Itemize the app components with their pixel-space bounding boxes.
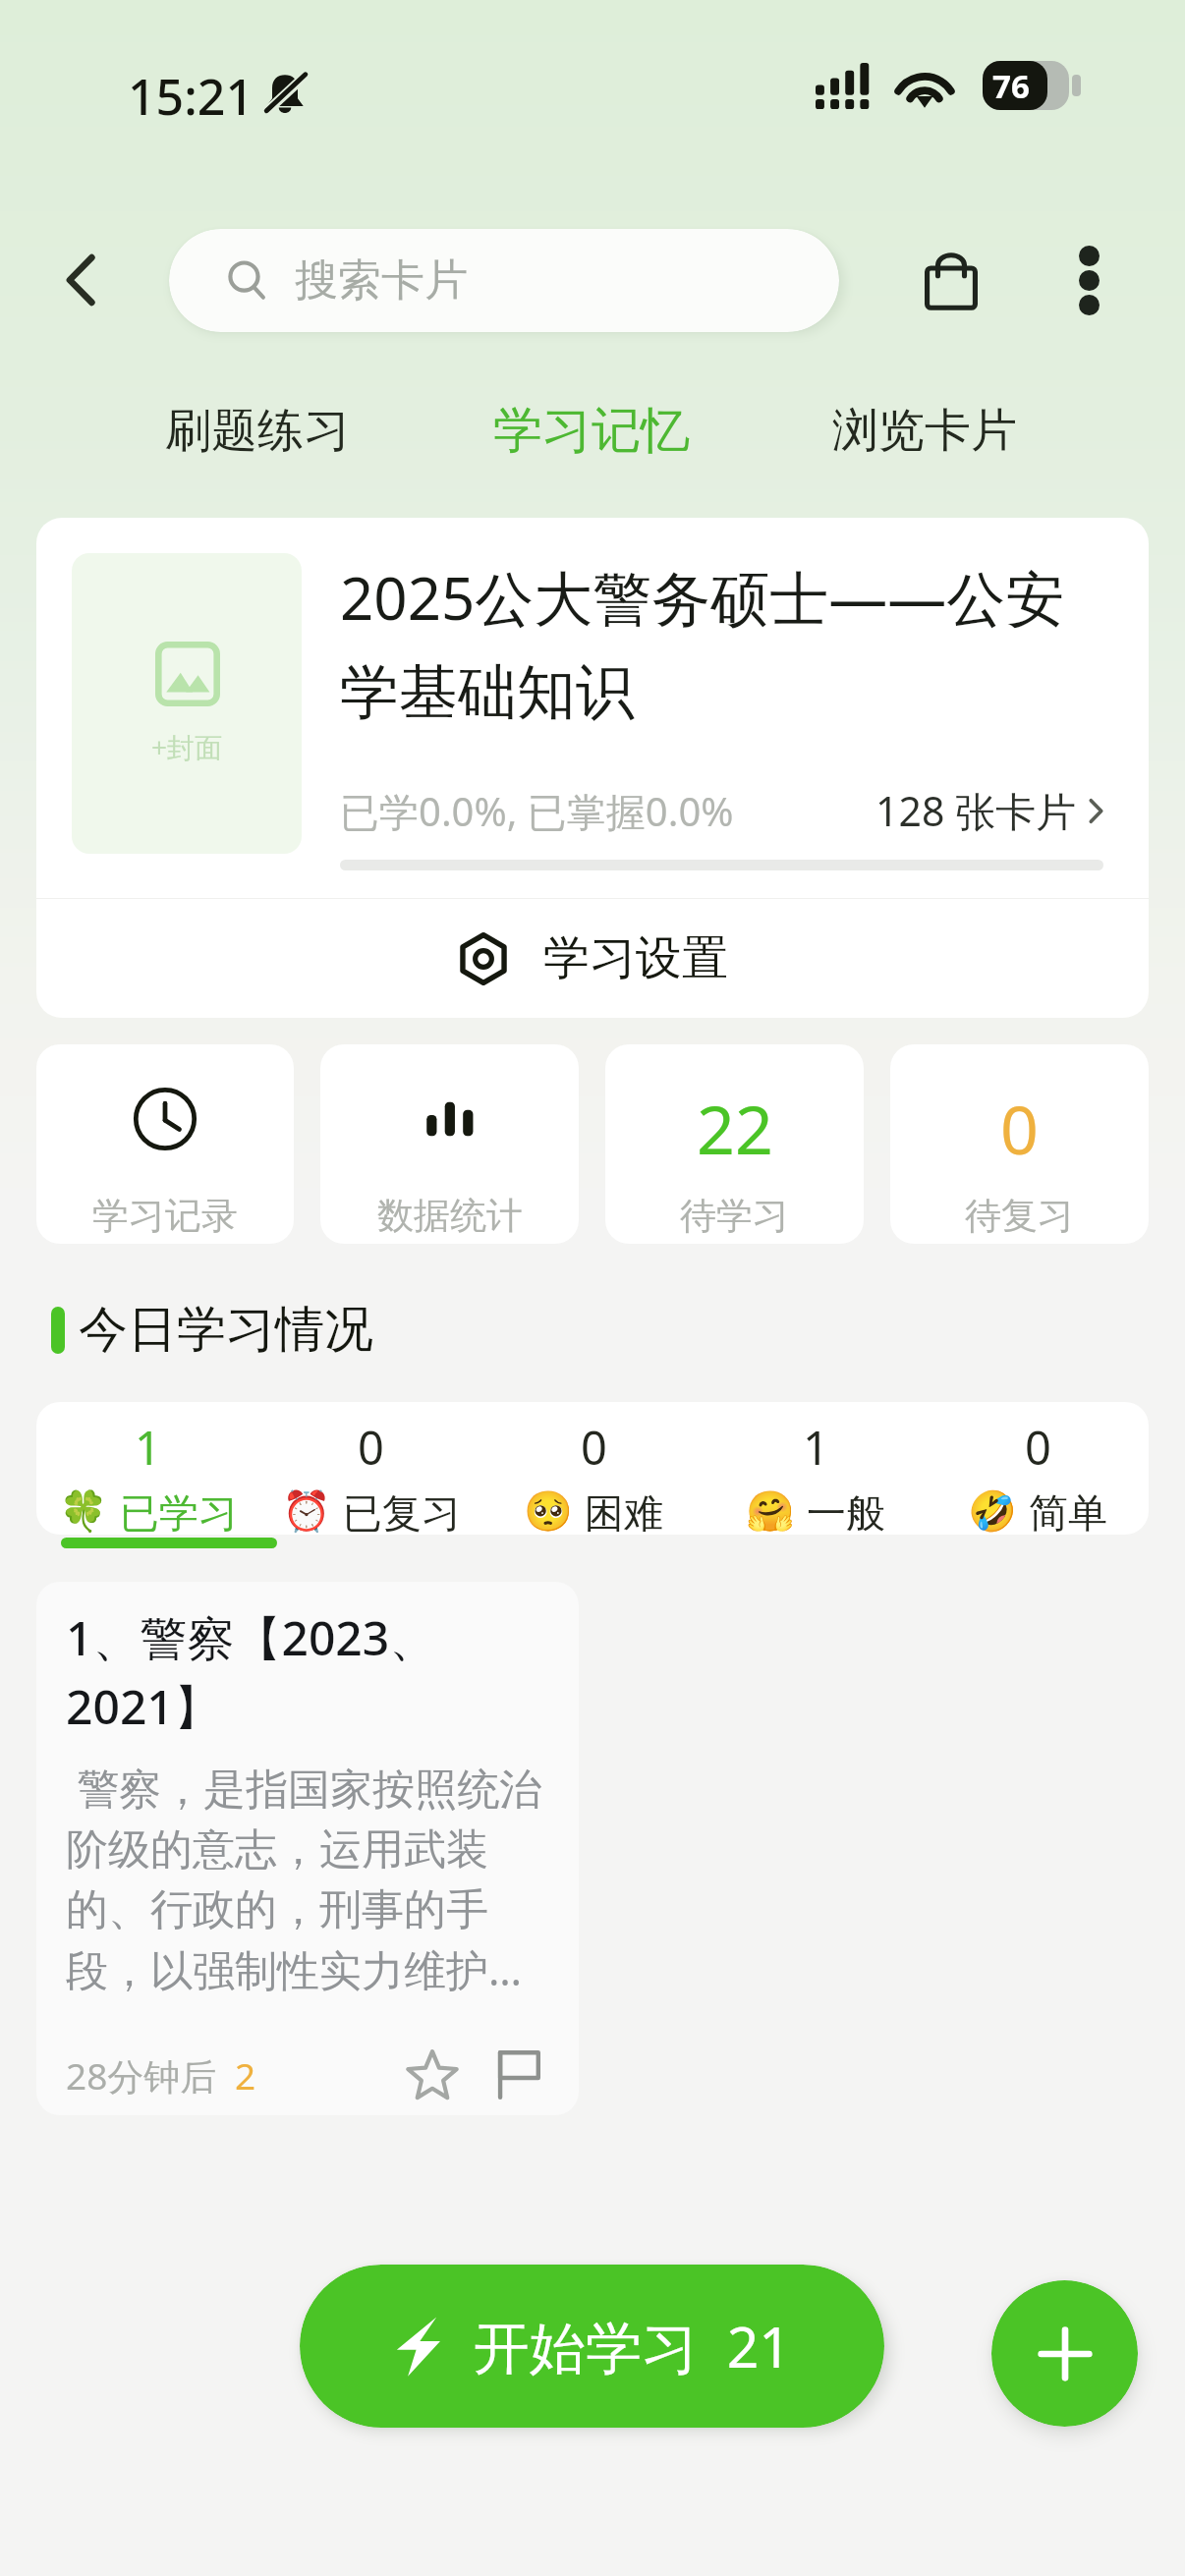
staticText: 学习设置 (543, 929, 728, 987)
staticText: 🤗 (746, 1488, 795, 1535)
staticText: 76 (992, 64, 1030, 108)
button[interactable]: 0 (259, 1402, 482, 1535)
staticText: 1 (803, 1416, 829, 1479)
button[interactable]: 0 (482, 1402, 705, 1535)
staticText: 2025公大警务硕士——公安学基础知识 (340, 557, 1103, 730)
button[interactable]: Flag (486, 2043, 551, 2107)
staticText: 1、警察【2023、2021】 (66, 1605, 557, 1738)
button[interactable]: 0 (927, 1402, 1149, 1535)
button[interactable]: 浏览卡片 (820, 388, 1029, 474)
staticText: 待复习 (965, 1193, 1074, 1239)
button[interactable]: 1、警察【2023、2021】 (36, 1582, 579, 2115)
staticText: 数据统计 (377, 1193, 523, 1239)
button[interactable]: 刷题练习 (153, 388, 362, 474)
button[interactable]: +封面 (72, 553, 302, 854)
staticText: 学习记录 (92, 1193, 238, 1239)
staticText: 0 (1025, 1416, 1051, 1479)
staticText: 22 (697, 1083, 773, 1155)
button[interactable]: 开始学习 21 (300, 2265, 884, 2428)
button[interactable]: Star (400, 2043, 465, 2107)
button[interactable]: 22 (605, 1044, 864, 1244)
button[interactable]: 1 (705, 1402, 927, 1535)
staticText: 搜索卡片 (295, 253, 468, 308)
staticText: 开始学习 21 (474, 2308, 791, 2384)
button[interactable]: 学习设置 (36, 899, 1149, 1018)
staticText: 已复习 (343, 1488, 461, 1535)
staticText: 🥺 (524, 1488, 573, 1535)
staticText: 已学0.0%, 已掌握0.0% (340, 784, 734, 838)
button[interactable]: Add (991, 2280, 1138, 2427)
staticText: 28分钟后 (66, 2050, 217, 2100)
staticText: +封面 (151, 728, 223, 765)
staticText: 警察，是指国家按照统治阶级的意志，运用武装的、行政的，刑事的手段，以强制性实力维… (66, 1759, 557, 1998)
staticText: 🤣 (968, 1488, 1017, 1535)
staticText: 已学习 (120, 1488, 238, 1535)
staticText: 待学习 (680, 1193, 789, 1239)
staticText: 0 (581, 1416, 607, 1479)
button[interactable]: 数据统计 (320, 1044, 579, 1244)
staticText: ⏰ (282, 1488, 331, 1535)
button[interactable]: More options (1040, 231, 1138, 329)
staticText: 困难 (585, 1488, 663, 1535)
button[interactable]: 1 (36, 1402, 259, 1535)
staticText: 刷题练习 (165, 402, 350, 460)
button[interactable]: +封面 (36, 518, 1149, 898)
staticText: 浏览卡片 (832, 402, 1017, 460)
staticText: 今日学习情况 (79, 1299, 373, 1361)
staticText: 1 (135, 1416, 161, 1479)
button[interactable]: Shop (896, 225, 1006, 335)
staticText: 学习记忆 (493, 400, 690, 462)
button[interactable]: 0 (890, 1044, 1149, 1244)
staticText: 0 (1000, 1083, 1039, 1155)
staticText: 0 (358, 1416, 384, 1479)
staticText: 一般 (807, 1488, 885, 1535)
staticText: 🍀 (59, 1488, 108, 1535)
staticText: 简单 (1029, 1488, 1107, 1535)
button[interactable]: Back (37, 237, 124, 323)
staticText: 2 (235, 2050, 256, 2100)
staticText: 15:21 (128, 63, 254, 130)
staticText: 128 张卡片 (875, 783, 1077, 838)
button[interactable]: 学习记忆 (481, 386, 702, 476)
button[interactable]: 搜索卡片 (169, 229, 839, 332)
button[interactable]: 学习记录 (36, 1044, 294, 1244)
